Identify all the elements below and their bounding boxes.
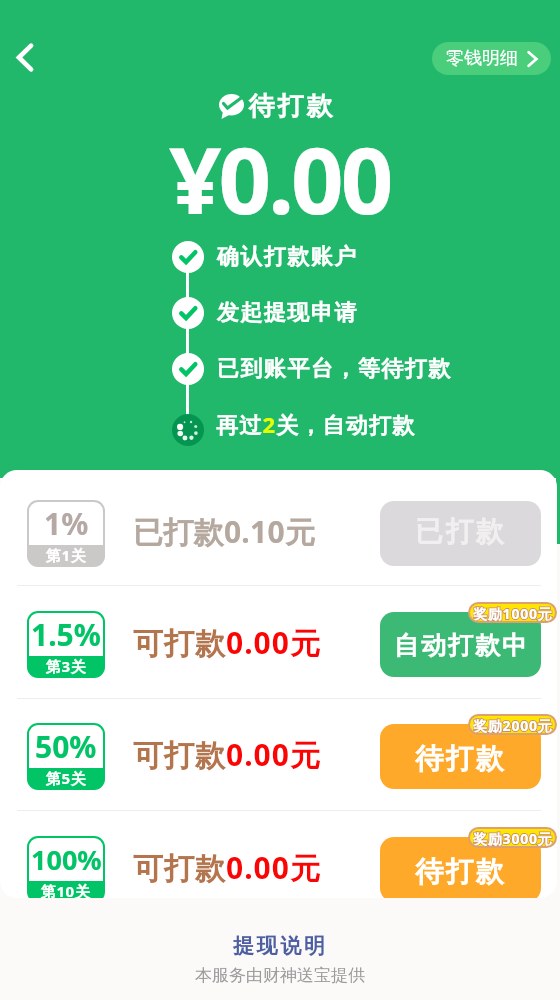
button[interactable]: 提现说明 — [229, 929, 332, 963]
staticText: 可打款0.00元 — [133, 622, 321, 663]
staticText: 第3关 — [46, 656, 87, 676]
staticText: 第1关 — [46, 545, 87, 565]
staticText: 50% — [35, 726, 97, 767]
staticText: 奖励3000元 — [473, 829, 553, 846]
staticText: 自动打款中 — [393, 630, 528, 661]
staticText: 待打款 — [415, 741, 507, 776]
staticText: 奖励1000元 — [473, 604, 553, 621]
staticText: 已到账平台，等待打款 — [216, 355, 451, 383]
staticText: 已打款0.10元 — [133, 511, 316, 552]
staticText: 奖励1000元 — [473, 604, 553, 621]
staticText: 再过2关，自动打款 — [216, 409, 416, 439]
staticText: 已打款 — [415, 514, 507, 549]
staticText: 发起提现申请 — [216, 299, 357, 327]
staticText: 奖励3000元 — [473, 829, 553, 846]
staticText: ¥0.00 — [169, 116, 391, 241]
button[interactable] — [0, 705, 557, 809]
button[interactable]: Back — [2, 34, 48, 80]
staticText: 100% — [31, 841, 102, 878]
staticText: 奖励2000元 — [473, 716, 553, 733]
staticText: 可打款0.00元 — [133, 734, 321, 775]
button[interactable] — [0, 482, 557, 586]
staticText: 1.5% — [31, 614, 101, 655]
button[interactable] — [0, 818, 557, 898]
button[interactable]: 待打款 — [380, 837, 541, 898]
staticText: 可打款0.00元 — [133, 847, 321, 888]
staticText: 零钱明细 — [446, 47, 518, 70]
staticText: 本服务由财神送宝提供 — [195, 965, 365, 986]
staticText: 第10关 — [41, 881, 91, 898]
button[interactable]: 零钱明细 — [432, 42, 551, 75]
button[interactable]: 自动打款中 — [380, 612, 541, 677]
button[interactable] — [0, 593, 557, 697]
staticText: 确认打款账户 — [216, 243, 357, 271]
staticText: 奖励2000元 — [473, 716, 553, 733]
button[interactable]: 待打款 — [380, 724, 541, 789]
button[interactable]: 已打款 — [380, 501, 541, 566]
staticText: 待打款 — [415, 854, 507, 889]
staticText: 待打款 — [247, 90, 334, 123]
staticText: 第5关 — [46, 768, 87, 788]
staticText: 1% — [44, 503, 89, 544]
staticText: 提现说明 — [233, 933, 328, 959]
